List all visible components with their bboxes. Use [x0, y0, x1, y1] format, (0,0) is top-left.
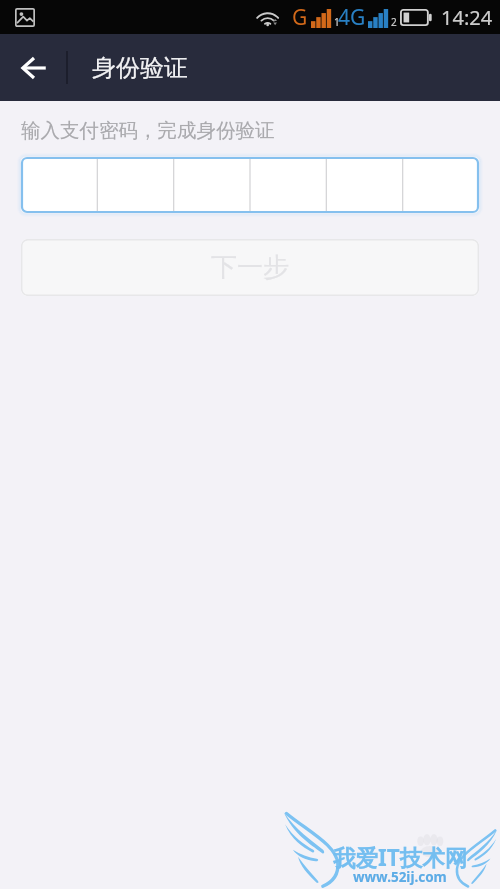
staticText: 1 [334, 15, 340, 29]
staticText: 4G [338, 3, 366, 32]
button[interactable]: 下一步 [21, 239, 479, 296]
staticText: 2 [391, 15, 397, 29]
button[interactable]: Payment password input [18, 154, 482, 216]
staticText: 我爱IT技术网 [333, 842, 468, 873]
staticText: 下一步 [211, 251, 289, 284]
staticText: 身份验证 [92, 53, 188, 83]
button[interactable]: Back [0, 34, 66, 101]
staticText: www.52ij.com [353, 868, 447, 886]
staticText: 14:24 [441, 4, 493, 31]
staticText: G [292, 3, 308, 32]
staticText: 输入支付密码，完成身份验证 [21, 118, 275, 143]
